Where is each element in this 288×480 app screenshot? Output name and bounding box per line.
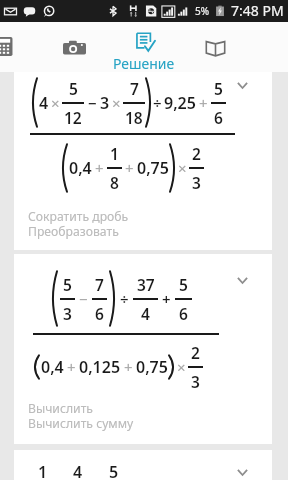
staticText: 0,125 [79,356,121,378]
staticText: ÷ [153,93,162,113]
staticText: + [162,289,171,309]
staticText: 7 [95,274,104,295]
staticText: + [67,357,76,377]
staticText: 9,25 [164,92,196,114]
staticText: 6 [179,303,188,324]
staticText: + [124,357,133,377]
button[interactable]: 4 [14,72,272,250]
staticText: 6 [214,107,223,128]
staticText: 8 [110,172,119,193]
staticText: 5 [214,78,223,99]
staticText: Сократить дробь [28,208,129,225]
staticText: 7:48 PM [231,1,284,20]
staticText: Вычислить [28,400,93,417]
staticText: 5 [179,274,188,295]
staticText: 5% [195,4,210,18]
staticText: 5 [69,78,78,99]
staticText: 4 [141,303,150,324]
staticText: 0,4 [41,356,64,378]
staticText: 5 [109,461,119,480]
button[interactable]: Book [200,22,230,72]
staticText: 3 [100,92,110,114]
staticText: 12 [64,107,82,128]
staticText: 37 [137,274,155,295]
staticText: 3 [191,371,200,392]
staticText: Решение [113,54,175,72]
button[interactable]: Expand [230,268,254,292]
button[interactable]: Решение [108,22,180,72]
button[interactable]: Expand [230,73,254,97]
staticText: ÷ [120,289,129,309]
staticText: 5 [63,274,72,295]
staticText: 7 [130,78,139,99]
staticText: Преобразовать [28,223,119,240]
staticText: 4 [39,92,49,114]
button[interactable]: 1 [14,450,272,480]
staticText: 1 [110,143,119,164]
staticText: 6 [95,303,104,324]
staticText: 2 [191,342,200,363]
staticText: × [177,357,186,377]
staticText: 2 [192,143,201,164]
staticText: − [88,93,97,113]
staticText: 3 [192,172,201,193]
staticText: 4 [73,461,83,480]
button[interactable]: Camera [59,22,89,72]
staticText: 1 [38,461,48,480]
button[interactable]: Expand [230,460,254,480]
staticText: Вычислить сумму [28,415,134,432]
staticText: 0,75 [137,157,169,179]
staticText: − [79,289,88,309]
staticText: + [125,158,134,178]
staticText: 18 [125,107,143,128]
staticText: × [51,93,60,113]
staticText: × [112,93,121,113]
button[interactable]: Calculator [0,22,18,72]
staticText: × [178,158,187,178]
staticText: 3 [63,303,72,324]
staticText: + [199,93,208,113]
staticText: 0,75 [136,356,168,378]
staticText: 0,4 [69,157,92,179]
button[interactable]: 5 [14,254,272,444]
staticText: + [95,158,104,178]
